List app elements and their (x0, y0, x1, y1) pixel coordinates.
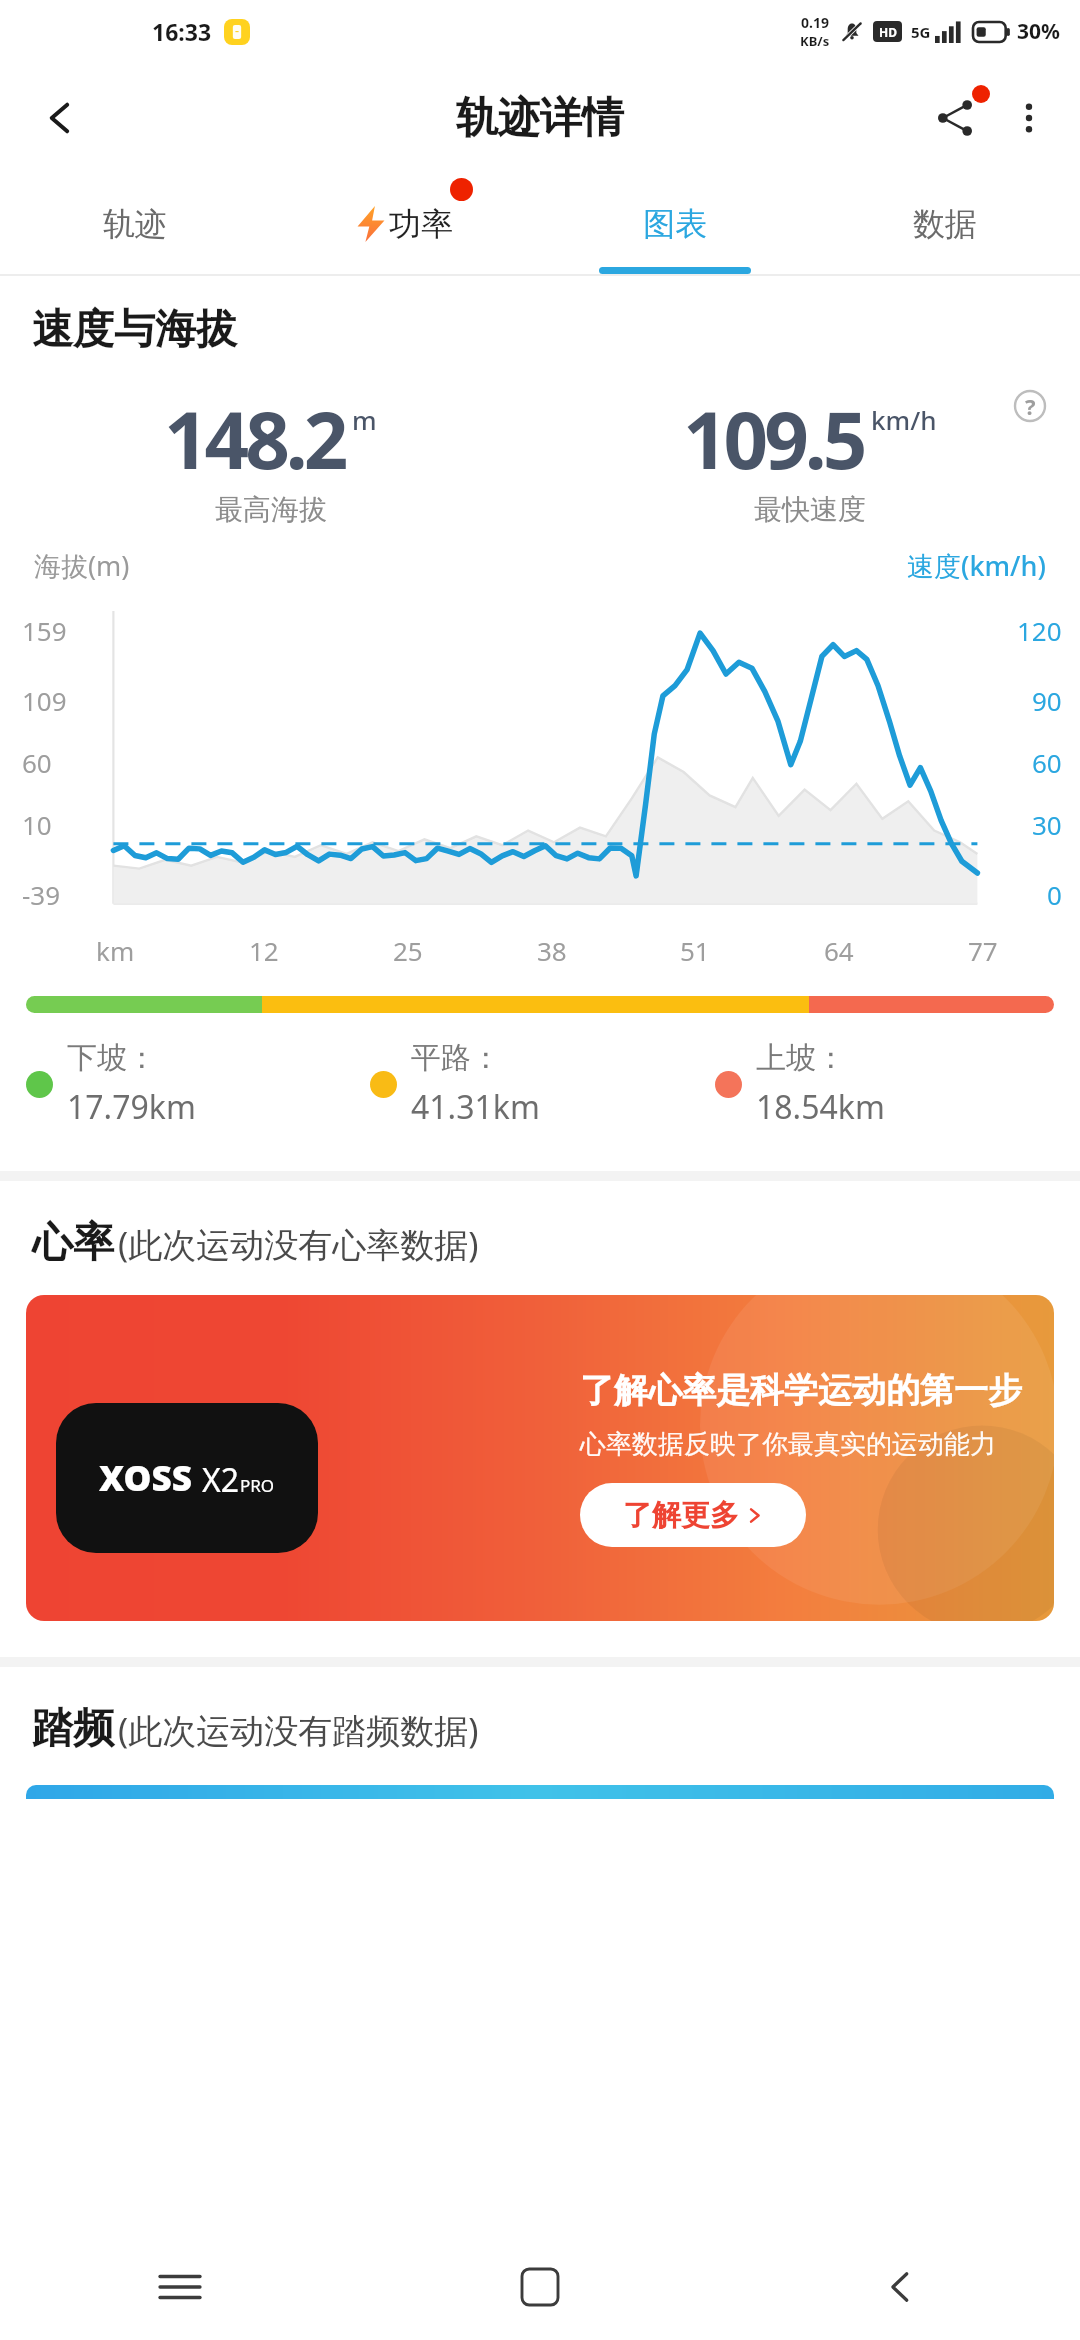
staticText: XOSS (99, 1454, 192, 1502)
staticText: 18.54km (756, 1085, 885, 1129)
button[interactable]: Back (28, 86, 92, 150)
staticText: 30% (1017, 17, 1060, 46)
staticText: 海拔(m) (34, 547, 130, 584)
staticText: 90 (1032, 683, 1062, 718)
staticText: 图表 (643, 204, 707, 244)
staticText: m (352, 402, 377, 437)
staticText: 速度(km/h) (907, 547, 1046, 584)
staticText: 51 (680, 933, 710, 968)
staticText: 轨迹 (103, 204, 167, 244)
staticText: 速度与海拔 (32, 304, 237, 356)
staticText: 16:33 (152, 16, 212, 47)
staticText: HD (879, 24, 897, 40)
button[interactable]: 了解更多 (580, 1483, 806, 1547)
staticText: 77 (968, 933, 998, 968)
staticText: -39 (22, 877, 61, 912)
staticText: 38 (537, 933, 567, 968)
button[interactable]: 轨迹 (0, 174, 270, 274)
staticText: 心率数据反映了你最真实的运动能力 (580, 1428, 996, 1461)
staticText: 109 (22, 683, 67, 718)
staticText: X2 (202, 1458, 240, 1502)
button[interactable]: 数据 (810, 174, 1080, 274)
button[interactable]: Back (720, 2234, 1080, 2340)
staticText: 30 (1032, 807, 1062, 842)
staticText: (此次运动没有踏频数据) (118, 1707, 479, 1753)
staticText: 数据 (913, 204, 977, 244)
staticText: 功率 (389, 204, 453, 244)
staticText: 159 (22, 613, 67, 648)
staticText: km (96, 933, 135, 968)
button[interactable]: Recents (0, 2234, 360, 2340)
button[interactable]: More options (994, 83, 1064, 153)
staticText: 最高海拔 (215, 492, 327, 527)
button[interactable]: 功率 (270, 174, 540, 274)
button[interactable]: Share (916, 79, 994, 157)
staticText: 心率 (32, 1217, 114, 1269)
staticText: 120 (1017, 613, 1062, 648)
staticText: 12 (249, 933, 279, 968)
staticText: 0.19 (801, 13, 829, 32)
staticText: (此次运动没有心率数据) (118, 1221, 479, 1267)
staticText: 148.2 (164, 386, 345, 492)
staticText: 60 (22, 745, 52, 780)
staticText: 17.79km (67, 1085, 196, 1129)
staticText: 下坡： (67, 1039, 157, 1077)
staticText: 25 (393, 933, 423, 968)
staticText: 踏频 (32, 1703, 114, 1755)
button[interactable]: XOSS (26, 1295, 1054, 1621)
staticText: 10 (22, 807, 52, 842)
staticText: 了解更多 (623, 1497, 739, 1534)
staticText: 109.5 (683, 386, 864, 492)
staticText: 60 (1032, 745, 1062, 780)
button[interactable]: Home (360, 2234, 720, 2340)
staticText: 平路： (411, 1039, 501, 1077)
staticText: KB/s (800, 32, 830, 50)
staticText: PRO (240, 1474, 275, 1497)
staticText: 5G (911, 22, 931, 42)
staticText: 0 (1047, 877, 1062, 912)
button[interactable]: Help (1010, 386, 1050, 426)
staticText: 轨迹详情 (456, 92, 624, 145)
staticText: 最快速度 (754, 492, 866, 527)
staticText: km/h (871, 402, 937, 437)
staticText: 41.31km (411, 1085, 540, 1129)
staticText: 64 (824, 933, 854, 968)
button[interactable]: 图表 (540, 174, 810, 274)
staticText: 了解心率是科学运动的第一步 (580, 1369, 1022, 1412)
staticText: ? (1025, 391, 1036, 421)
staticText: 上坡： (756, 1039, 846, 1077)
